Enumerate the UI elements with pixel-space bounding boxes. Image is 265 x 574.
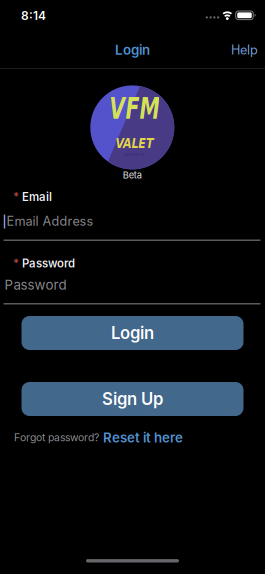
staticText: Sign Up bbox=[102, 389, 163, 409]
staticText: RIDE WITH US bbox=[116, 151, 151, 158]
staticText: VALET bbox=[109, 134, 159, 152]
button[interactable]: Sign Up bbox=[21, 382, 243, 416]
staticText: Password bbox=[22, 256, 75, 270]
staticText: Password bbox=[4, 277, 66, 293]
staticText: * bbox=[13, 256, 19, 270]
staticText: * bbox=[13, 190, 19, 204]
staticText: Login bbox=[115, 42, 150, 58]
staticText: Email bbox=[22, 190, 52, 204]
staticText: Forgot password? bbox=[14, 431, 99, 444]
staticText: VFM bbox=[98, 91, 170, 125]
staticText: Beta bbox=[123, 169, 142, 181]
staticText: Login bbox=[111, 323, 154, 343]
button[interactable]: Login bbox=[21, 316, 243, 350]
staticText: Email Address bbox=[6, 213, 93, 229]
staticText: Help bbox=[231, 42, 258, 58]
staticText: Reset it here bbox=[103, 429, 183, 446]
staticText: 8:14 bbox=[21, 8, 46, 23]
button[interactable]: Reset it here bbox=[103, 429, 183, 446]
button[interactable]: Help bbox=[231, 42, 258, 58]
